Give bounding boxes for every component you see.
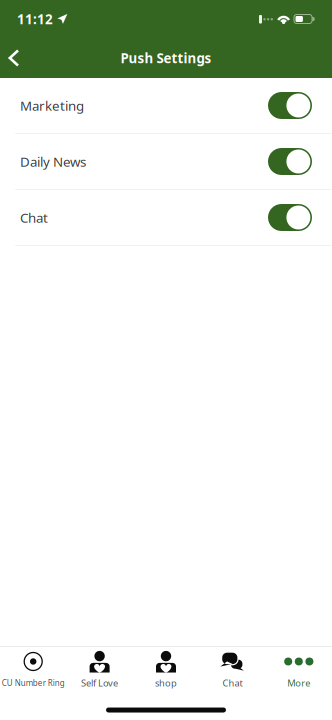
staticText: More — [287, 677, 310, 689]
staticText: Chat — [222, 677, 242, 689]
button[interactable]: CU Number Ring — [0, 644, 66, 706]
button[interactable]: Chat — [199, 644, 266, 706]
button[interactable]: Daily News — [0, 134, 332, 190]
button[interactable]: shop — [133, 644, 199, 706]
staticText: Chat — [20, 209, 48, 226]
staticText: shop — [155, 677, 177, 689]
button[interactable]: Back — [0, 38, 28, 78]
staticText: Self Love — [81, 677, 118, 689]
staticText: Push Settings — [120, 49, 211, 67]
button[interactable]: More — [266, 644, 332, 706]
button[interactable]: Self Love — [66, 644, 133, 706]
staticText: 11:12 — [17, 10, 53, 28]
button[interactable]: Marketing — [0, 78, 332, 134]
staticText: Daily News — [20, 153, 86, 170]
staticText: Marketing — [20, 97, 84, 114]
staticText: CU Number Ring — [2, 678, 65, 688]
button[interactable]: Chat — [0, 190, 332, 246]
